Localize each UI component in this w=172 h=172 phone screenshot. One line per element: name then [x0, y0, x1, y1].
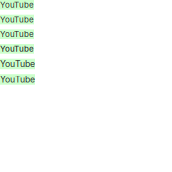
staticText: YouTube [0, 0, 34, 10]
staticText: YouTube [0, 44, 34, 54]
staticText: YouTube [0, 59, 35, 69]
staticText: YouTube [0, 74, 35, 85]
staticText: YouTube [0, 15, 34, 24]
staticText: YouTube [0, 29, 34, 39]
